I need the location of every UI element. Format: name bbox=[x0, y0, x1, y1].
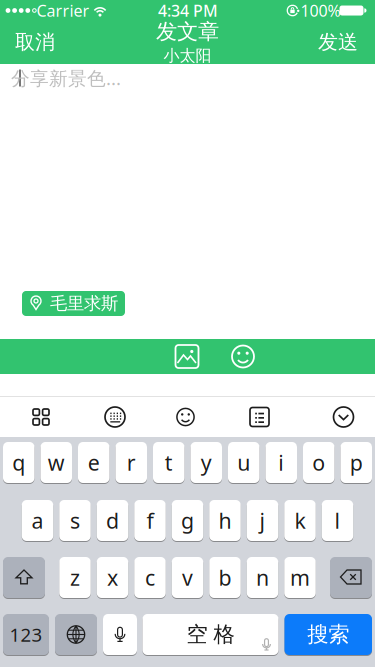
staticText: s bbox=[70, 506, 80, 535]
button[interactable]: 键盘 bbox=[104, 406, 126, 428]
staticText: 取消 bbox=[15, 30, 55, 54]
button[interactable]: s bbox=[59, 499, 91, 541]
button[interactable]: l bbox=[322, 499, 353, 541]
button[interactable]: k bbox=[284, 499, 316, 541]
staticText: 4:34 PM bbox=[158, 0, 218, 21]
staticText: 100% bbox=[300, 0, 340, 21]
button[interactable]: Shift bbox=[3, 556, 45, 598]
button[interactable]: p bbox=[340, 441, 372, 483]
button[interactable]: q bbox=[3, 441, 34, 483]
staticText: e bbox=[88, 448, 100, 477]
button[interactable]: 表情 bbox=[231, 344, 255, 368]
button[interactable]: 收起键盘 bbox=[332, 406, 354, 428]
button[interactable]: z bbox=[59, 556, 91, 598]
button[interactable]: 搜索 bbox=[284, 613, 372, 655]
staticText: l bbox=[334, 506, 340, 535]
staticText: f bbox=[146, 506, 153, 535]
staticText: Carrier bbox=[36, 0, 89, 21]
staticText: u bbox=[237, 448, 250, 477]
staticText: x bbox=[107, 563, 118, 592]
button[interactable]: w bbox=[40, 441, 72, 483]
button[interactable]: 取消 bbox=[15, 30, 55, 54]
button[interactable]: a bbox=[22, 499, 53, 541]
button[interactable]: 空格 bbox=[142, 613, 278, 655]
button[interactable]: 毛里求斯 bbox=[22, 291, 125, 316]
staticText: i bbox=[278, 448, 284, 477]
button[interactable]: 应用 bbox=[32, 408, 49, 425]
staticText: b bbox=[218, 563, 231, 592]
button[interactable]: d bbox=[97, 499, 128, 541]
button[interactable]: 添加图片 bbox=[175, 344, 199, 368]
staticText: a bbox=[31, 506, 43, 535]
button[interactable]: e bbox=[78, 441, 109, 483]
staticText: c bbox=[145, 563, 155, 592]
button[interactable]: m bbox=[284, 556, 316, 598]
button[interactable]: u bbox=[228, 441, 259, 483]
button[interactable]: c bbox=[134, 556, 166, 598]
button[interactable]: x bbox=[97, 556, 128, 598]
button[interactable]: 删除 bbox=[330, 556, 372, 598]
button[interactable]: t bbox=[153, 441, 184, 483]
staticText: j bbox=[259, 506, 265, 535]
staticText: t bbox=[165, 448, 173, 477]
staticText: 小太阳 bbox=[163, 46, 211, 65]
button[interactable]: v bbox=[172, 556, 203, 598]
staticText: w bbox=[48, 448, 65, 477]
button[interactable]: i bbox=[265, 441, 297, 483]
button[interactable]: 听写 bbox=[103, 613, 137, 655]
staticText: 毛里求斯 bbox=[50, 293, 118, 314]
button[interactable]: g bbox=[172, 499, 203, 541]
staticText: v bbox=[182, 563, 193, 592]
staticText: 分享新景色... bbox=[11, 66, 121, 90]
staticText: g bbox=[181, 506, 194, 535]
staticText: o bbox=[312, 448, 325, 477]
button[interactable]: 列表 bbox=[249, 406, 270, 427]
staticText: n bbox=[256, 563, 269, 592]
button[interactable]: n bbox=[247, 556, 278, 598]
staticText: m bbox=[290, 563, 310, 592]
staticText: 空 格 bbox=[186, 621, 234, 648]
staticText: d bbox=[106, 506, 119, 535]
button[interactable]: r bbox=[115, 441, 147, 483]
staticText: 发文章 bbox=[156, 19, 219, 45]
staticText: k bbox=[294, 506, 305, 535]
staticText: 发送 bbox=[318, 30, 358, 54]
staticText: y bbox=[201, 448, 212, 477]
button[interactable]: f bbox=[134, 499, 166, 541]
staticText: 123 bbox=[9, 622, 42, 647]
staticText: z bbox=[70, 563, 80, 592]
staticText: 搜索 bbox=[307, 621, 349, 648]
button[interactable]: j bbox=[247, 499, 278, 541]
button[interactable]: b bbox=[209, 556, 241, 598]
button[interactable]: o bbox=[303, 441, 334, 483]
button[interactable]: 表情 bbox=[175, 407, 195, 427]
staticText: p bbox=[350, 448, 363, 477]
button[interactable]: 发送 bbox=[318, 30, 358, 54]
button[interactable]: 数字键盘 bbox=[3, 613, 49, 655]
button[interactable]: y bbox=[190, 441, 222, 483]
staticText: h bbox=[218, 506, 231, 535]
button[interactable]: 下一个键盘 bbox=[55, 613, 97, 655]
staticText: q bbox=[12, 448, 25, 477]
button[interactable]: h bbox=[209, 499, 241, 541]
staticText: r bbox=[127, 448, 136, 477]
